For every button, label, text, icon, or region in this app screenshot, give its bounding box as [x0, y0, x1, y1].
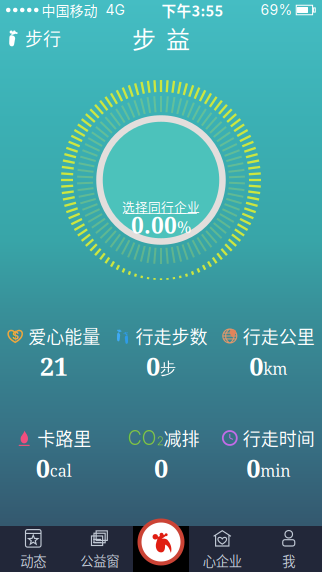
staticText: 步 — [160, 358, 176, 379]
staticText: % — [177, 216, 191, 238]
staticText: 心企业 — [203, 551, 242, 570]
staticText: 0 — [146, 349, 160, 383]
staticText: 0.00 — [131, 210, 177, 240]
staticText: km — [263, 358, 287, 379]
button[interactable]: 行走步数 — [107, 325, 214, 377]
button[interactable]: 步行 — [0, 20, 71, 56]
staticText: 卡路里 — [37, 425, 91, 451]
staticText: 2 — [156, 434, 163, 448]
staticText: min — [260, 460, 290, 481]
button[interactable]: 我 — [255, 526, 322, 572]
staticText: 下午3:55 — [161, 0, 223, 21]
button[interactable]: 行走时间 — [215, 427, 322, 479]
button[interactable]: 动态 — [0, 526, 66, 572]
staticText: 0 — [249, 349, 263, 383]
button[interactable]: 行走公里 — [215, 325, 322, 377]
staticText: cal — [50, 460, 72, 481]
staticText: 步 益 — [132, 21, 190, 55]
button[interactable]: CO — [107, 427, 214, 479]
staticText: 减排 — [163, 425, 199, 451]
staticText: 4G — [97, 1, 124, 18]
button[interactable]: 心企业 — [189, 526, 255, 572]
staticText: 我 — [282, 551, 295, 570]
button[interactable]: 首页 — [135, 516, 187, 568]
staticText: 0 — [246, 451, 260, 485]
staticText: 步行 — [25, 25, 61, 51]
staticText: 行走步数 — [135, 323, 207, 349]
staticText: 行走时间 — [243, 425, 315, 451]
staticText: 0 — [154, 451, 168, 485]
staticText: 69% — [260, 1, 292, 18]
button[interactable]: 卡路里 — [0, 427, 107, 479]
staticText: 选择同行企业 — [122, 197, 200, 216]
staticText: 21 — [40, 349, 68, 383]
staticText: CO — [127, 426, 156, 450]
staticText: 行走公里 — [243, 323, 315, 349]
staticText: $ — [12, 329, 19, 342]
staticText: 中国移动 — [38, 0, 97, 20]
staticText: 爱心能量 — [28, 323, 100, 349]
button[interactable]: $ — [0, 325, 107, 377]
staticText: 公益窗 — [80, 551, 119, 570]
staticText: 0 — [36, 451, 50, 485]
staticText: 动态 — [20, 551, 46, 570]
button[interactable]: 公益窗 — [66, 526, 133, 572]
